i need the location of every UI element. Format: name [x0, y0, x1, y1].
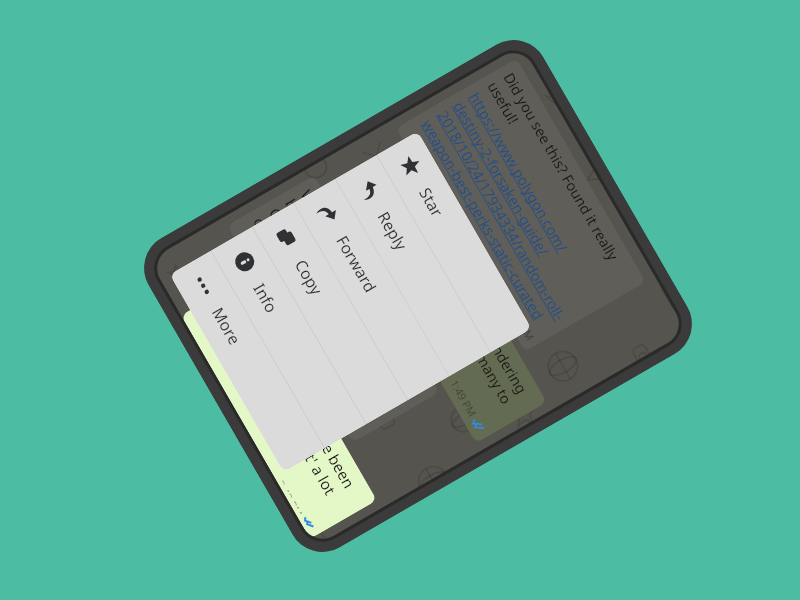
- button[interactable]: Star: [377, 131, 532, 352]
- staticText: Info: [248, 279, 283, 317]
- button[interactable]: More: [169, 251, 324, 472]
- button[interactable]: Copy: [252, 203, 407, 424]
- button[interactable]: Reply: [335, 155, 490, 376]
- staticText: Star: [414, 184, 448, 221]
- staticText: Did you see this? Found it really useful…: [484, 69, 637, 297]
- staticText: Copy: [290, 256, 328, 299]
- button[interactable]: What submachine gun have you been runnin…: [227, 175, 439, 443]
- staticText: More: [207, 303, 245, 349]
- staticText: Yeah it's definitely OP. I've been using…: [195, 287, 368, 527]
- staticText: 1:49 PM: [447, 377, 480, 419]
- staticText: Reply: [372, 208, 412, 254]
- button[interactable]: Info: [211, 227, 366, 448]
- button[interactable]: Oh nice, I've been wondering how those w…: [362, 205, 547, 443]
- staticText: 2:48 PM: [281, 478, 306, 515]
- button[interactable]: Yeah it's definitely OP. I've been using…: [181, 277, 377, 539]
- staticText: https://www.polygon.com/destiny-2-forsak…: [418, 89, 603, 335]
- staticText: What submachine gun have you been runnin…: [249, 186, 430, 426]
- button[interactable]: Forward: [294, 179, 449, 400]
- staticText: 2:47 PM: [333, 392, 365, 434]
- staticText: Oh nice, I've been wondering how those w…: [384, 216, 538, 426]
- staticText: 1:49 PM: [505, 301, 537, 343]
- button[interactable]: Did you see this? Found it really useful…: [396, 58, 646, 352]
- staticText: Forward: [331, 232, 381, 297]
